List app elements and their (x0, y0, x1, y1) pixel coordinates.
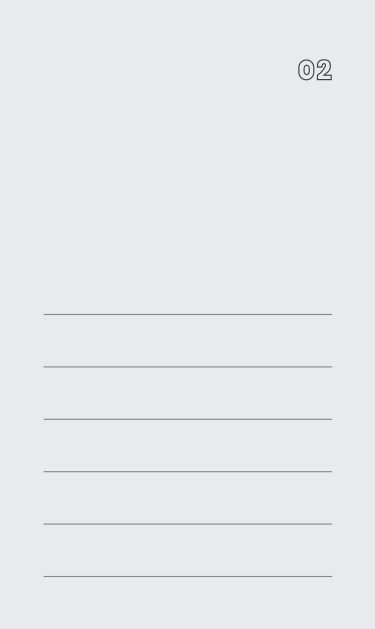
button[interactable]: Page 02 (0, 0, 375, 629)
